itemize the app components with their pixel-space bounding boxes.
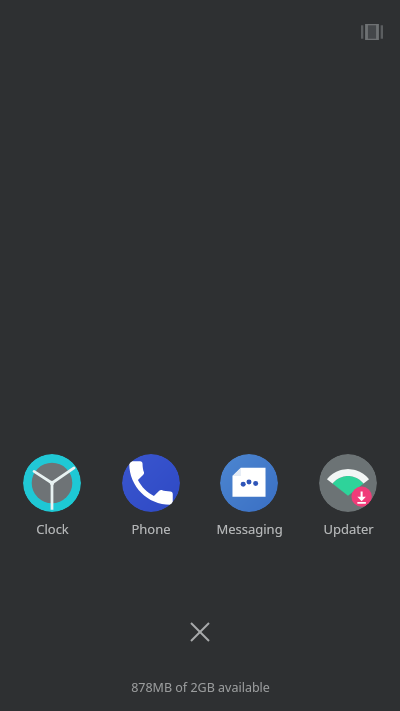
staticText: Phone bbox=[131, 520, 171, 538]
button[interactable]: Messaging bbox=[203, 452, 295, 540]
button[interactable]: Recent apps bbox=[358, 18, 386, 46]
button[interactable]: Phone bbox=[105, 452, 197, 540]
staticText: Messaging bbox=[216, 520, 283, 538]
button[interactable]: Close bbox=[180, 612, 220, 652]
staticText: Updater bbox=[323, 520, 374, 538]
staticText: Clock bbox=[36, 520, 69, 538]
button[interactable]: Updater bbox=[302, 452, 394, 540]
button[interactable]: Clock bbox=[6, 452, 98, 540]
staticText: 878MB of 2GB available bbox=[131, 679, 270, 696]
